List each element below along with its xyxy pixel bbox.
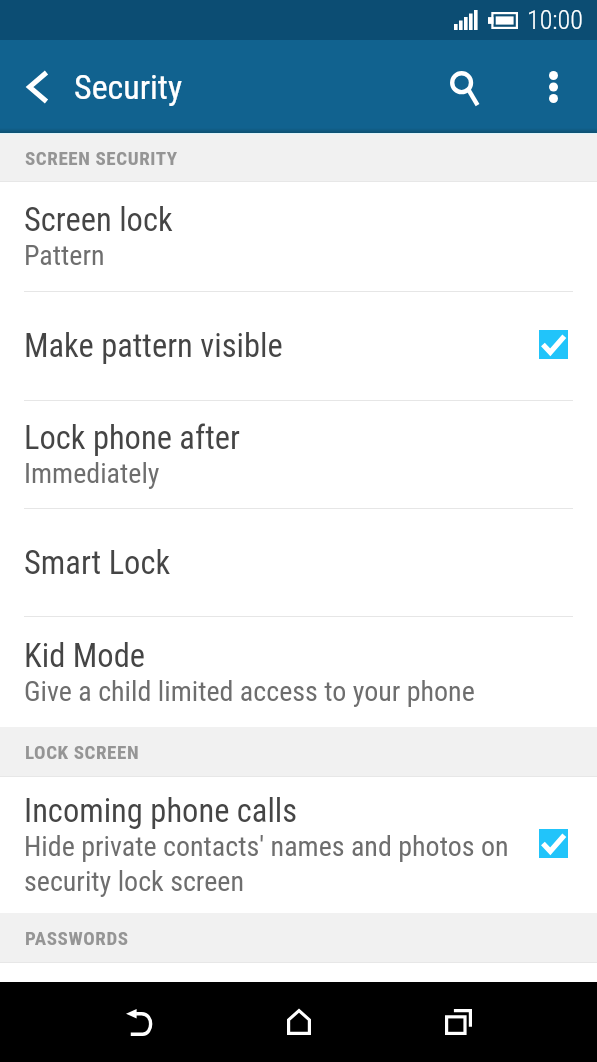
button[interactable]: More options — [523, 57, 583, 117]
staticText: LOCK SCREEN — [25, 741, 140, 763]
staticText: Lock phone after — [24, 419, 240, 457]
button[interactable]: Lock phone after — [0, 401, 597, 508]
staticText: Kid Mode — [24, 637, 145, 675]
button[interactable]: Search — [429, 55, 493, 119]
staticText: Screen lock — [24, 201, 173, 239]
button[interactable]: Screen lock — [0, 182, 597, 291]
staticText: Make pattern visible — [24, 327, 283, 365]
button[interactable]: Enabled — [539, 330, 568, 359]
staticText: Pattern — [24, 239, 105, 272]
button[interactable]: Smart Lock — [0, 509, 597, 616]
staticText: Incoming phone calls — [24, 792, 298, 830]
staticText: Security — [74, 67, 183, 107]
button[interactable]: Kid Mode — [0, 617, 597, 727]
button[interactable]: Make pattern visible — [0, 292, 597, 400]
button[interactable]: Back — [100, 982, 180, 1062]
staticText: Hide private contacts' names and photos … — [24, 830, 509, 898]
button[interactable]: Enabled — [539, 829, 568, 858]
staticText: Smart Lock — [24, 544, 171, 582]
staticText: Give a child limited access to your phon… — [24, 675, 475, 708]
staticText: 10:00 — [527, 5, 583, 35]
button[interactable]: Navigate up — [0, 40, 74, 133]
button[interactable]: Recent apps — [418, 982, 498, 1062]
staticText: Immediately — [24, 457, 160, 490]
staticText: SCREEN SECURITY — [25, 147, 178, 169]
button[interactable]: Incoming phone calls — [0, 777, 597, 913]
staticText: PASSWORDS — [25, 927, 129, 949]
button[interactable]: Home — [259, 982, 339, 1062]
